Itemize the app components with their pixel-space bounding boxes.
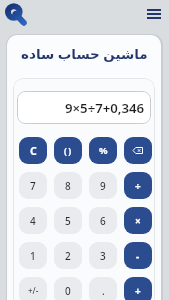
button[interactable]: ÷ — [124, 172, 152, 199]
staticText: 6 — [100, 214, 106, 228]
button[interactable]: 9 — [89, 172, 117, 199]
button[interactable]: 1 — [19, 242, 47, 269]
staticText: . — [102, 284, 105, 298]
staticText: % — [99, 144, 108, 157]
staticText: + — [135, 284, 141, 298]
staticText: 7 — [30, 179, 36, 193]
staticText: 2 — [65, 249, 71, 263]
button[interactable]: × — [124, 207, 152, 234]
button[interactable]: 5 — [54, 207, 82, 234]
staticText: ماشین حساب ساده — [21, 45, 148, 63]
staticText: 0 — [65, 284, 71, 298]
staticText: 4 — [30, 214, 36, 228]
staticText: 5 — [65, 214, 71, 228]
button[interactable]: 2 — [54, 242, 82, 269]
staticText: C — [30, 144, 37, 158]
staticText: ÷ — [135, 179, 141, 193]
button[interactable]: + — [124, 277, 152, 300]
staticText: ( ) — [64, 145, 72, 157]
staticText: 3 — [100, 249, 106, 263]
staticText: × — [135, 214, 141, 228]
button[interactable]: 0 — [54, 277, 82, 300]
button[interactable] — [124, 137, 152, 164]
button[interactable]: 6 — [89, 207, 117, 234]
button[interactable]: 8 — [54, 172, 82, 199]
button[interactable]: C — [19, 137, 47, 164]
button[interactable]: 3 — [89, 242, 117, 269]
staticText: +/- — [28, 285, 39, 296]
staticText: - — [136, 249, 140, 263]
staticText: 9 — [100, 179, 106, 193]
button[interactable] — [147, 9, 161, 19]
button[interactable]: ( ) — [54, 137, 82, 164]
button[interactable]: - — [124, 242, 152, 269]
button[interactable] — [5, 3, 27, 26]
staticText: 9×5÷7+0,346 — [65, 99, 145, 117]
staticText: 1 — [30, 249, 36, 263]
button[interactable]: . — [89, 277, 117, 300]
button[interactable]: 7 — [19, 172, 47, 199]
staticText: 8 — [65, 179, 71, 193]
button[interactable]: % — [89, 137, 117, 164]
button[interactable]: 4 — [19, 207, 47, 234]
button[interactable]: +/- — [19, 277, 47, 300]
